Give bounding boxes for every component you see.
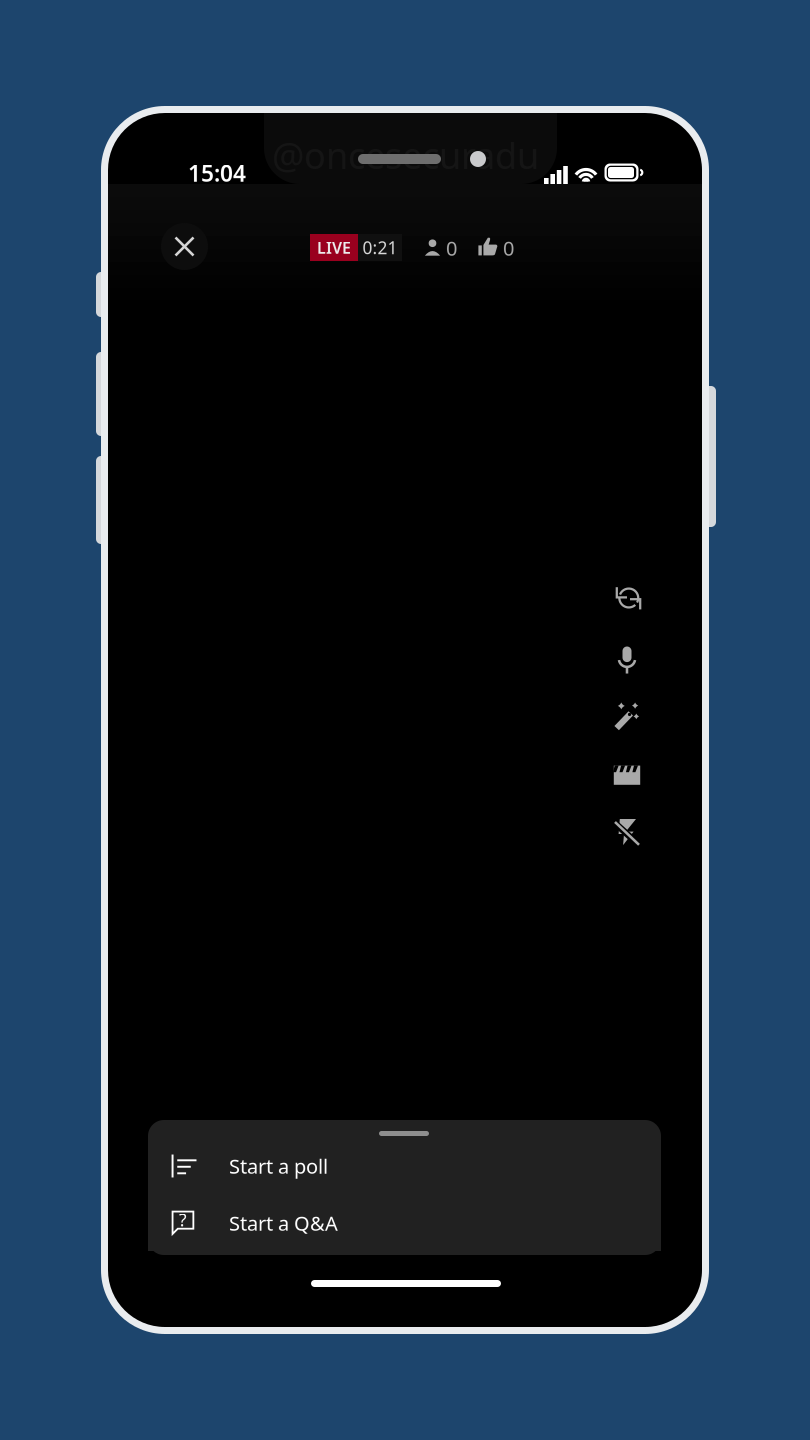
staticText: @oncesecuradu [272,131,539,179]
staticText: Start a poll [229,1153,328,1179]
button[interactable]: ? [108,113,702,1327]
staticText: Start a Q&A [229,1210,338,1236]
button[interactable]: Microphone [108,113,702,1327]
staticText: 0:21 [362,236,397,259]
staticText: LIVE [317,237,351,258]
staticText: 0 [446,235,457,261]
staticText: ? [179,1208,187,1231]
button[interactable]: Flash off [108,113,702,1327]
button[interactable]: LIVE [108,113,702,1327]
staticText: 0 [503,235,514,261]
button[interactable]: Start a poll [108,113,702,1327]
button[interactable]: Effects [108,113,702,1327]
button[interactable]: Flip camera [108,113,702,1327]
button[interactable]: Scenes [108,113,702,1327]
button[interactable]: Close live stream [108,113,702,1327]
staticText: 15:04 [188,158,246,188]
